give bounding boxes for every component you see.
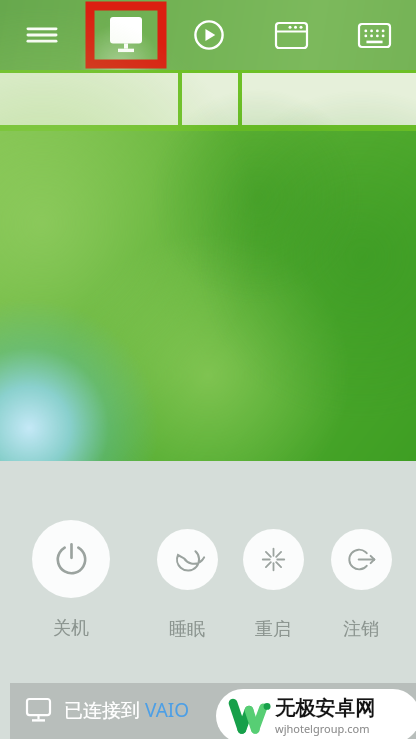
staticText: 无极安卓网 — [275, 696, 375, 721]
staticText: 睡眠 — [169, 618, 205, 641]
button[interactable] — [242, 73, 416, 125]
button[interactable]: Desktop — [84, 0, 167, 70]
staticText: 已连接到 — [64, 697, 145, 723]
button[interactable]: Media — [167, 0, 250, 70]
button[interactable]: Sign out — [315, 529, 407, 641]
staticText: 关机 — [53, 617, 89, 640]
button[interactable]: Keyboard — [333, 0, 416, 70]
staticText: VAIO — [145, 697, 190, 723]
button[interactable]: Shut down — [25, 520, 117, 640]
button[interactable]: 已连接到 — [10, 683, 416, 739]
staticText: wjhotelgroup.com — [275, 721, 370, 736]
button[interactable]: Restart — [227, 529, 319, 641]
staticText: 注销 — [343, 618, 379, 641]
button[interactable] — [0, 73, 178, 125]
button[interactable]: Menu — [0, 0, 84, 70]
button[interactable] — [182, 73, 238, 125]
button[interactable]: Windows — [250, 0, 333, 70]
staticText: 重启 — [255, 618, 291, 641]
button[interactable]: Sleep — [141, 529, 233, 641]
